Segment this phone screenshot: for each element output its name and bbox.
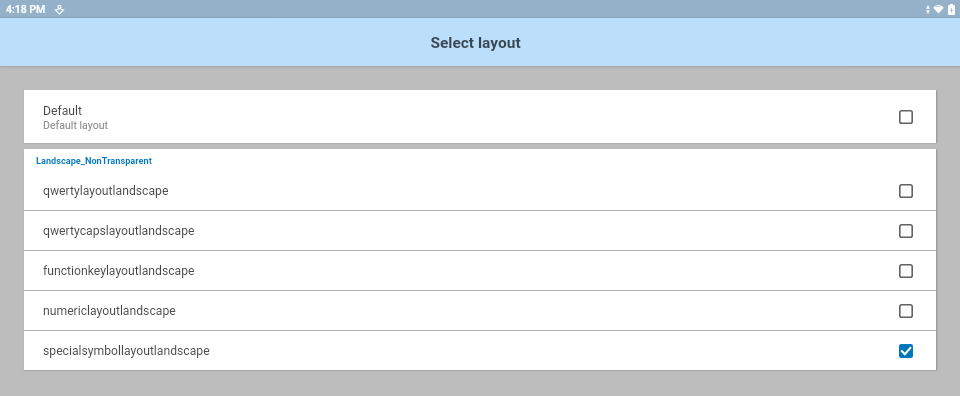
staticText: Landscape_NonTransparent	[36, 155, 152, 166]
staticText: Default	[43, 104, 82, 118]
staticText: Select layout	[430, 34, 521, 52]
staticText: qwertycapslayoutlandscape	[43, 224, 875, 238]
staticText: 4:18 PM	[6, 3, 46, 15]
button[interactable]: functionkeylayoutlandscape	[24, 251, 936, 290]
staticText: functionkeylayoutlandscape	[43, 264, 875, 278]
button[interactable]: qwertylayoutlandscape	[24, 171, 936, 210]
button[interactable]: Checkbox, not checked	[898, 109, 914, 125]
staticText: Default layout	[43, 119, 109, 131]
staticText: qwertylayoutlandscape	[43, 184, 875, 198]
button[interactable]: Checkbox, checked	[898, 343, 914, 359]
button[interactable]: Default	[24, 90, 936, 143]
button[interactable]: Checkbox, not checked	[898, 263, 914, 279]
button[interactable]: Checkbox, not checked	[898, 303, 914, 319]
staticText: specialsymbollayoutlandscape	[43, 344, 875, 358]
button[interactable]: Checkbox, not checked	[898, 223, 914, 239]
button[interactable]: specialsymbollayoutlandscape	[24, 331, 936, 370]
button[interactable]: numericlayoutlandscape	[24, 291, 936, 330]
button[interactable]: Checkbox, not checked	[898, 183, 914, 199]
button[interactable]: qwertycapslayoutlandscape	[24, 211, 936, 250]
staticText: numericlayoutlandscape	[43, 304, 875, 318]
